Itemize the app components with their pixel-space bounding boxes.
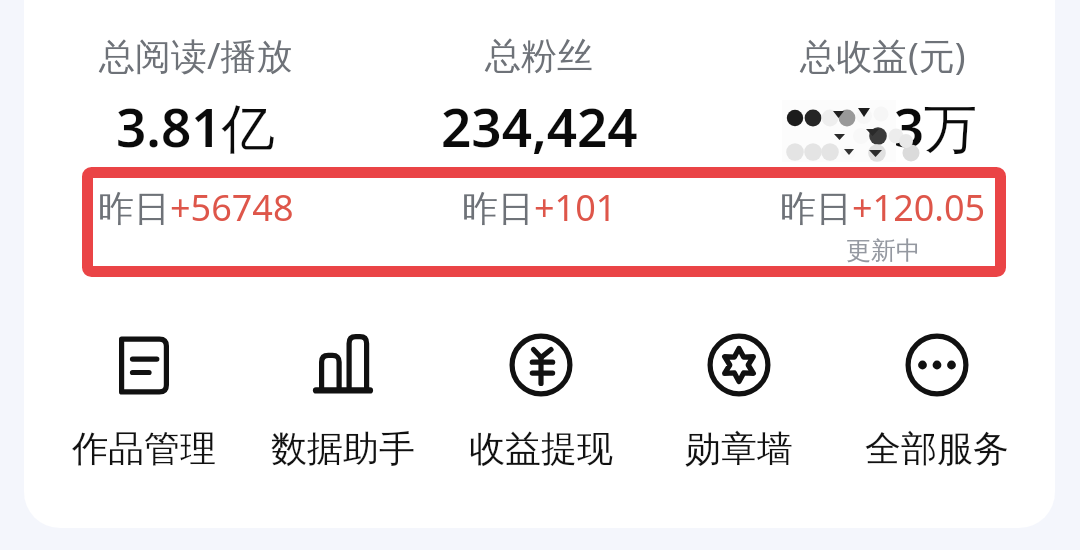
staticText: 昨日+56748 [98,183,294,232]
button[interactable]: 全部服务 [838,327,1036,471]
staticText: 1,823万 [788,90,978,162]
button[interactable]: 总粉丝 [367,0,711,280]
other: 收益提现 [503,327,579,403]
staticText: 更新中 [846,235,921,266]
staticText: 收益提现 [469,426,613,471]
other: 作品管理 [106,327,182,403]
button[interactable]: 作品管理 [44,327,243,471]
other: 勋章墙 [701,327,777,403]
other: 数据助手 [305,327,381,403]
button[interactable]: 数据助手 [243,327,442,471]
staticText: 总粉丝 [485,33,593,78]
button[interactable]: 收益提现 [442,327,640,471]
staticText: 234,424 [441,90,638,162]
staticText: 总阅读/播放 [99,31,293,80]
staticText: 勋章墙 [685,426,793,471]
other: 全部服务 [899,327,975,403]
staticText: 数据助手 [271,426,415,471]
staticText: 全部服务 [865,426,1009,471]
button[interactable]: 总收益(元) [711,0,1055,280]
button[interactable]: 总阅读/播放 [24,0,367,280]
button[interactable]: 勋章墙 [640,327,838,471]
staticText: 3.81亿 [116,90,275,162]
staticText: 总收益(元) [800,31,966,80]
staticText: 昨日+120.05 [780,183,986,232]
staticText: 作品管理 [72,426,216,471]
staticText: 昨日+101 [462,183,617,232]
